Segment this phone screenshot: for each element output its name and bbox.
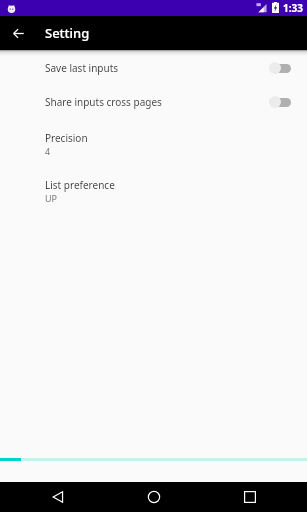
staticText: Save last inputs (45, 61, 269, 75)
button[interactable]: Save last inputs (0, 51, 307, 85)
staticText: Share inputs cross pages (45, 95, 269, 109)
staticText: UP (45, 192, 58, 204)
button[interactable]: List preference (0, 166, 307, 213)
staticText: Setting (45, 24, 90, 42)
button[interactable]: Back (9, 482, 106, 512)
staticText: List preference (45, 178, 115, 192)
staticText: 1:33 (283, 1, 303, 15)
button[interactable]: Recent apps (202, 482, 298, 512)
staticText: Precision (45, 131, 88, 145)
staticText: 4 (45, 145, 51, 157)
button[interactable]: Share inputs cross pages (0, 85, 307, 119)
button[interactable]: Back (8, 23, 28, 43)
button[interactable]: Precision (0, 119, 307, 166)
button[interactable]: Home (106, 482, 202, 512)
